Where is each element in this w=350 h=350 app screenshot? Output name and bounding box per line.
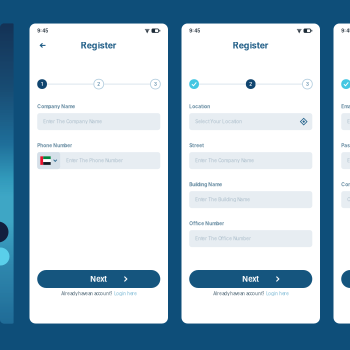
staticText: Confirm Password (341, 182, 350, 187)
button[interactable]: Next (341, 270, 350, 288)
staticText: Enter The Company Name (43, 119, 102, 124)
staticText: Next (242, 274, 259, 283)
staticText: 3 (306, 81, 309, 87)
staticText: Select Your Location (195, 119, 242, 124)
button[interactable]: Enter The Company Name (37, 113, 160, 130)
staticText: Login here (266, 291, 288, 296)
staticText: 9:45 (189, 28, 200, 34)
button[interactable]: Login here (266, 291, 288, 296)
staticText: Login here (114, 291, 136, 296)
staticText: Enter The Office Number (195, 236, 251, 241)
button[interactable]: Next (37, 270, 160, 288)
staticText: Confirm Your Password (347, 197, 350, 202)
button[interactable]: Enter Your Password (341, 152, 350, 169)
staticText: Register (81, 40, 117, 51)
staticText: Building Name (189, 182, 222, 187)
staticText: Email (341, 104, 350, 109)
staticText: 2 (249, 81, 252, 87)
staticText: Office Number (189, 221, 224, 226)
button[interactable]: Select Your Location (189, 113, 312, 130)
button[interactable]: Next (189, 270, 312, 288)
staticText: Next (90, 274, 107, 283)
staticText: Password (341, 143, 350, 148)
staticText: Enter The Company Name (195, 158, 254, 163)
staticText: 2 (97, 81, 100, 87)
staticText: Enter The Phone Number (66, 158, 123, 163)
button[interactable]: Enter The Office Number (189, 230, 312, 247)
button[interactable]: Back (37, 40, 48, 51)
staticText: Location (189, 104, 210, 109)
staticText: Enter The Building Name (195, 197, 250, 202)
staticText: Company Name (37, 104, 75, 109)
staticText: 9:45 (37, 28, 48, 34)
staticText: 1 (41, 81, 43, 87)
staticText: Already have an account? (213, 291, 264, 296)
staticText: Enter Your Email (347, 119, 350, 124)
button[interactable]: Enter The Building Name (189, 191, 312, 208)
button[interactable]: Login here (114, 291, 136, 296)
staticText: Street (189, 143, 204, 148)
staticText: Phone Number (37, 143, 72, 148)
button[interactable]: Enter The Company Name (189, 152, 312, 169)
staticText: 3 (154, 81, 157, 87)
button[interactable]: Enter Your Email (341, 113, 350, 130)
button[interactable]: Enter The Phone Number (37, 152, 160, 169)
staticText: Enter Your Password (347, 158, 350, 163)
button[interactable]: Confirm Your Password (341, 191, 350, 208)
staticText: 9:45 (341, 28, 350, 34)
staticText: Already have an account? (61, 291, 112, 296)
staticText: Register (233, 40, 269, 51)
